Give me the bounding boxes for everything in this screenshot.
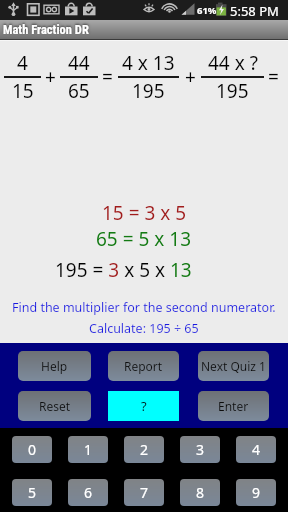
button[interactable]: 9 [236, 479, 276, 506]
staticText: Help [41, 358, 68, 374]
staticText: 1 [84, 440, 93, 459]
button[interactable]: Enter [198, 391, 269, 421]
button[interactable]: 8 [180, 479, 220, 506]
button[interactable]: 0 [12, 436, 52, 463]
staticText: + [185, 64, 196, 90]
staticText: = [268, 64, 279, 90]
staticText: Reset [39, 398, 71, 414]
staticText: Calculate: 195 ÷ 65 [89, 320, 199, 337]
staticText: 6 [84, 483, 93, 502]
staticText: 4 x 13 [122, 50, 175, 76]
staticText: Find the multiplier for the second numer… [12, 299, 276, 316]
staticText: 7 [140, 483, 149, 502]
staticText: 15 = 3 x 5 [102, 200, 187, 226]
staticText: 195 [216, 78, 249, 104]
staticText: 5 [28, 483, 37, 502]
button[interactable]: Report [108, 351, 179, 381]
button[interactable]: 6 [68, 479, 108, 506]
button[interactable]: Reset [18, 391, 91, 421]
staticText: 4 [252, 440, 261, 459]
staticText: 44 x ? [208, 50, 258, 76]
staticText: 9 [252, 483, 261, 502]
staticText: Next Quiz 1 [201, 358, 266, 374]
staticText: ? [141, 397, 147, 415]
staticText: 61% [197, 4, 217, 17]
staticText: + [45, 64, 56, 90]
button[interactable]: 7 [124, 479, 164, 506]
button[interactable]: Help [18, 351, 91, 381]
button[interactable]: 4 [236, 436, 276, 463]
staticText: Report [124, 358, 163, 374]
button[interactable]: 2 [124, 436, 164, 463]
staticText: 8 [196, 483, 205, 502]
staticText: 5:58 PM [230, 2, 279, 20]
staticText: 195 [132, 78, 165, 104]
staticText: 4 [17, 50, 28, 76]
staticText: Enter [218, 398, 249, 414]
staticText: 195 = 3 x 5 x 13 [55, 257, 192, 283]
button[interactable]: ? [108, 391, 179, 421]
button[interactable]: 1 [68, 436, 108, 463]
button[interactable]: 3 [180, 436, 220, 463]
staticText: = [102, 64, 113, 90]
button[interactable]: Next Quiz 1 [198, 351, 269, 381]
staticText: 0 [28, 440, 37, 459]
staticText: 2 [140, 440, 149, 459]
staticText: 3 [196, 440, 205, 459]
staticText: 65 = 5 x 13 [96, 226, 192, 252]
staticText: Math Fraction DR [3, 22, 89, 37]
staticText: 44 [68, 50, 90, 76]
staticText: 15 [12, 78, 34, 104]
button[interactable]: 5 [12, 479, 52, 506]
staticText: 65 [68, 78, 90, 104]
